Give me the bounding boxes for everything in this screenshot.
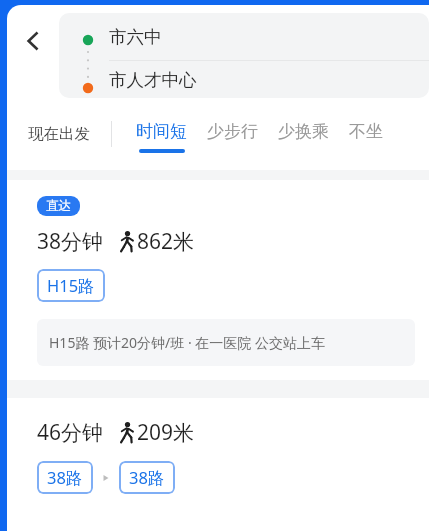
- button[interactable]: 直达: [7, 180, 429, 380]
- staticText: 现在出发: [28, 124, 90, 144]
- staticText: H15路 预计20分钟/班 · 在一医院 公交站上车: [49, 333, 325, 352]
- button[interactable]: 时间短: [132, 108, 191, 160]
- button[interactable]: 38路: [129, 466, 165, 489]
- button[interactable]: 少步行: [203, 108, 262, 160]
- button[interactable]: 市六中: [59, 13, 429, 98]
- staticText: 不坐: [349, 121, 383, 142]
- button[interactable]: 38路: [47, 466, 83, 489]
- button[interactable]: Back: [7, 5, 59, 77]
- staticText: 46分钟: [37, 418, 104, 447]
- staticText: 862米: [137, 227, 195, 256]
- staticText: 少步行: [207, 121, 258, 142]
- staticText: 直达: [46, 198, 71, 214]
- button[interactable]: 现在出发: [7, 108, 111, 160]
- button[interactable]: H15路: [47, 274, 95, 297]
- staticText: 38路: [47, 466, 83, 489]
- staticText: 市人才中心: [109, 69, 197, 91]
- staticText: 时间短: [136, 121, 187, 142]
- button[interactable]: 少换乘: [274, 108, 333, 160]
- staticText: 209米: [137, 418, 195, 447]
- staticText: 38分钟: [37, 227, 104, 256]
- staticText: 少换乘: [278, 121, 329, 142]
- button[interactable]: 46分钟: [7, 398, 429, 494]
- button[interactable]: 不坐: [345, 108, 387, 160]
- staticText: 市六中: [109, 26, 162, 48]
- staticText: 38路: [129, 466, 165, 489]
- staticText: H15路: [47, 274, 95, 297]
